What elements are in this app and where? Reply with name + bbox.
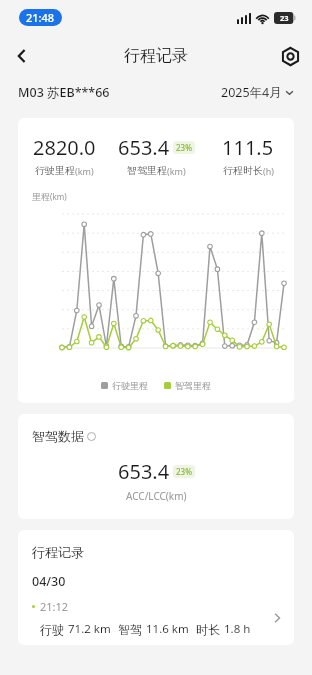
staticText: 1.8 h	[224, 621, 251, 637]
other: Open trip detail	[270, 611, 284, 625]
staticText: 行驶里程	[35, 164, 75, 177]
other: Info	[87, 432, 96, 441]
staticText: (km)	[167, 165, 186, 177]
staticText: 里程	[32, 191, 50, 202]
staticText: 04/30	[32, 573, 66, 590]
staticText: 11.6 km	[146, 621, 189, 637]
button[interactable]: Back	[0, 36, 44, 76]
staticText: 行驶里程	[112, 380, 148, 391]
staticText: (km)	[50, 191, 67, 202]
button[interactable]: 智驾数据	[18, 414, 294, 519]
button[interactable]: 2820.0	[18, 118, 294, 403]
staticText: 2820.0	[33, 134, 96, 161]
staticText: 23%	[176, 466, 192, 477]
staticText: 21:48	[26, 10, 55, 25]
staticText: 111.5	[222, 134, 274, 161]
staticText: 智驾	[118, 621, 146, 637]
button[interactable]: 2025年4月	[221, 84, 294, 101]
button[interactable]: 21:12	[32, 599, 284, 637]
staticText: 71.2 km	[68, 621, 111, 637]
staticText: 行程记录	[124, 46, 188, 66]
staticText: (km)	[75, 165, 94, 177]
staticText: 行程记录	[32, 544, 84, 560]
staticText: 行驶	[40, 621, 68, 637]
staticText: 智驾数据	[32, 428, 84, 444]
staticText: 21:12	[40, 599, 69, 614]
staticText: 23%	[176, 142, 192, 153]
button[interactable]: Settings	[268, 36, 312, 76]
staticText: (h)	[263, 165, 274, 177]
staticText: 653.4	[118, 134, 170, 161]
staticText: 2025年4月	[221, 84, 282, 101]
staticText: 智驾里程	[127, 164, 167, 177]
staticText: 653.4	[118, 458, 170, 485]
staticText: 23	[280, 13, 289, 23]
button[interactable]: M03 苏EB***66	[18, 84, 110, 101]
staticText: 智驾里程	[175, 380, 211, 391]
staticText: ACC/LCC(km)	[126, 489, 187, 503]
staticText: 时长	[196, 621, 224, 637]
staticText: 行程时长	[223, 164, 263, 177]
